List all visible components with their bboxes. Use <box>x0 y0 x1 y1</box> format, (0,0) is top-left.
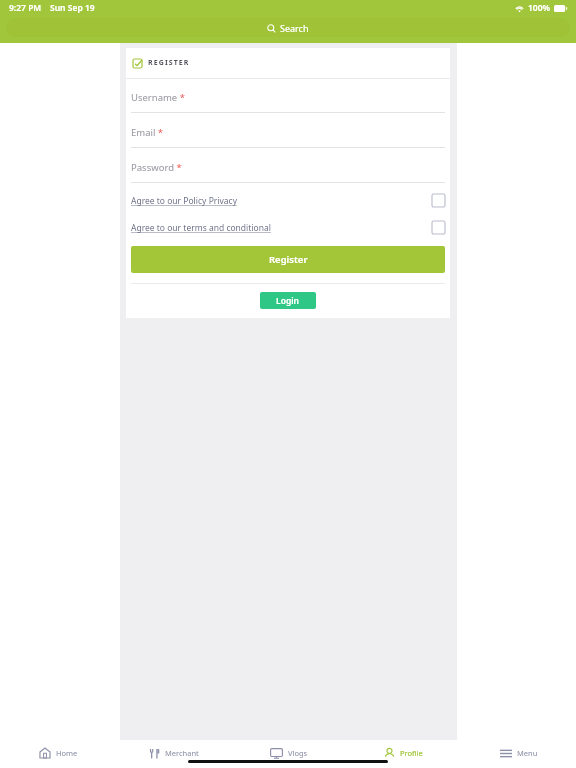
staticText: 100% <box>528 2 551 14</box>
staticText: Home <box>56 748 78 758</box>
staticText: Search <box>280 22 309 34</box>
staticText: Username * <box>131 91 185 104</box>
button[interactable]: Login <box>260 292 316 309</box>
staticText: Agree to our Policy Privacy <box>131 195 237 207</box>
staticText: Agree to our terms and conditional <box>131 222 271 234</box>
staticText: Menu <box>517 748 538 758</box>
staticText: Register <box>269 253 308 266</box>
button[interactable]: Agree to our Policy Privacy <box>131 194 445 207</box>
button[interactable]: Agree to our terms and conditional <box>131 221 445 234</box>
staticText: Sun Sep 19 <box>50 2 95 14</box>
staticText: Password * <box>131 161 182 174</box>
button[interactable]: Search <box>6 18 570 37</box>
staticText: 9:27 PM <box>9 2 42 14</box>
button[interactable]: Register <box>131 246 445 273</box>
staticText: Profile <box>400 748 423 758</box>
staticText: Email * <box>131 126 164 139</box>
button[interactable]: Merchant <box>116 742 231 764</box>
button[interactable]: Profile <box>346 742 461 764</box>
staticText: Login <box>276 295 300 307</box>
button[interactable]: Home <box>0 742 116 764</box>
staticText: REGISTER <box>148 58 190 68</box>
button[interactable]: Menu <box>461 742 576 764</box>
staticText: Vlogs <box>288 748 308 758</box>
button[interactable]: Vlogs <box>231 742 346 764</box>
staticText: Merchant <box>165 748 199 758</box>
